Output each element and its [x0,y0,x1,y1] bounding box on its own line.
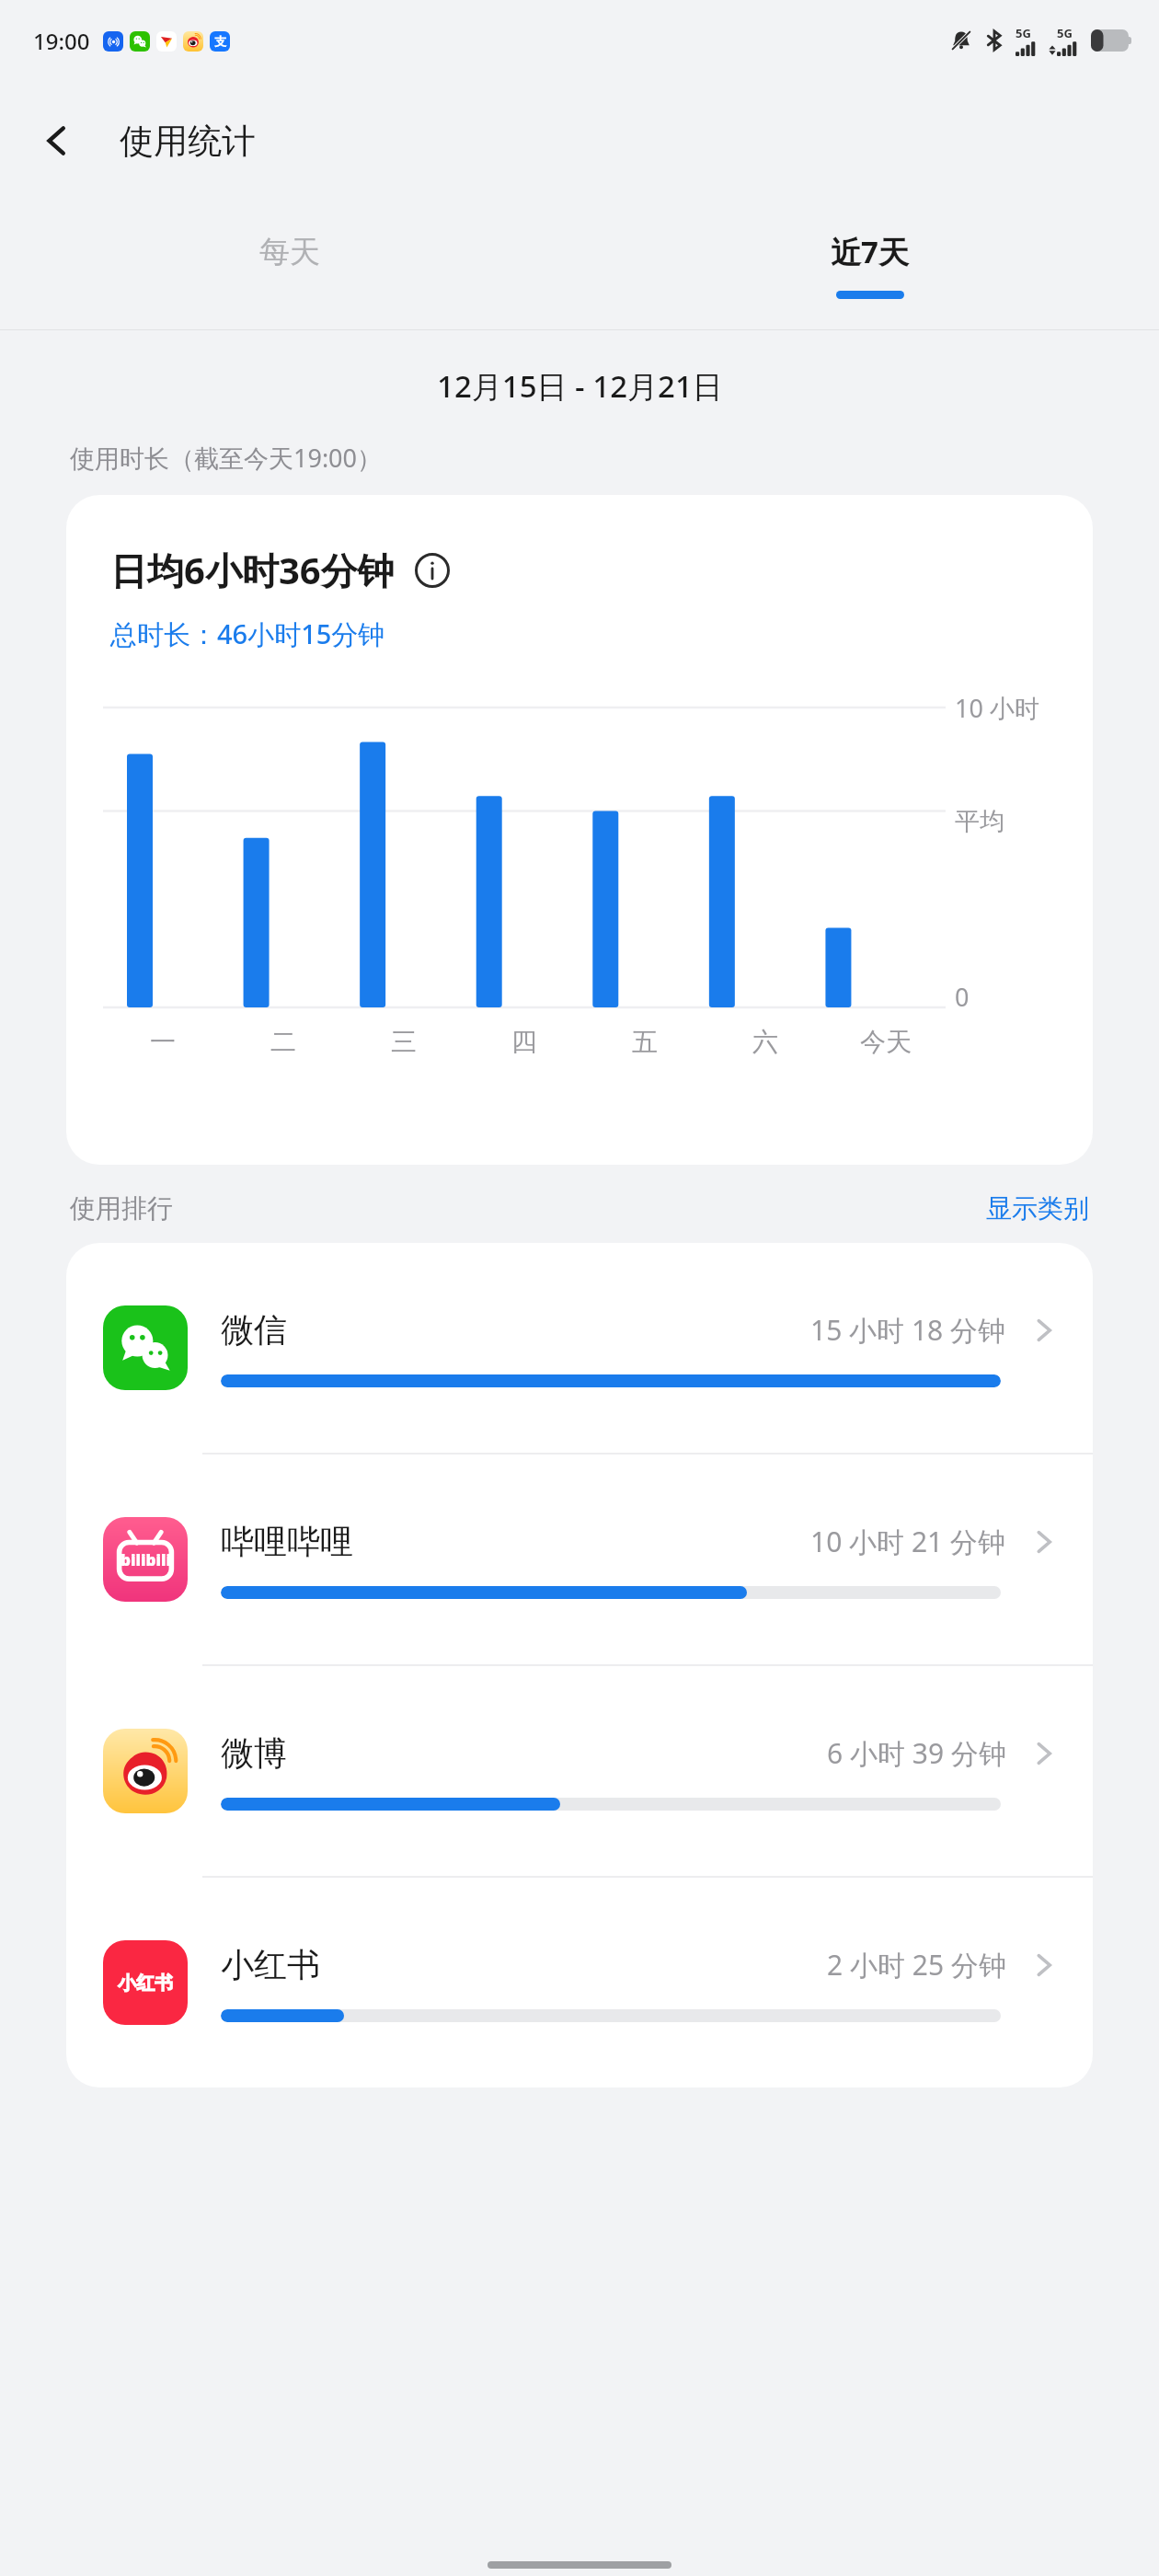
staticText: 微信 [221,1309,287,1351]
button[interactable]: 显示类别 [986,1192,1089,1225]
staticText: 每天 [259,233,320,271]
staticText: 使用统计 [120,120,256,163]
button[interactable]: Back [22,106,92,176]
button[interactable]: 小红书 [66,1878,1093,2087]
staticText: bilibili [120,1549,171,1570]
staticText: 日均6小时36分钟 [110,545,395,595]
staticText: 六 [752,1026,778,1058]
staticText: 6 小时 39 分钟 [827,1734,1006,1772]
staticText: 小红书 [221,1944,320,1985]
staticText: 小红书 [118,1972,173,1995]
staticText: 0 [955,980,970,1013]
other: Battery 23% [1091,29,1131,52]
button[interactable]: 微信 [66,1243,1093,1453]
staticText: 使用时长（截至今天19:00） [70,441,383,475]
staticText: 5G [1057,25,1073,41]
staticText: 今天 [860,1026,912,1058]
staticText: 哔哩哔哩 [221,1521,353,1562]
button[interactable]: 近7天 [579,201,1159,329]
staticText: 平均 [955,806,1004,837]
staticText: 总时长：46小时15分钟 [110,615,385,652]
staticText: 四 [511,1026,537,1058]
button[interactable]: 每天 [0,201,579,329]
button[interactable]: 微博 [66,1666,1093,1876]
button[interactable]: Info [413,551,452,590]
staticText: 微博 [221,1732,287,1774]
staticText: 五 [632,1026,658,1058]
staticText: 5G [1016,25,1031,41]
button[interactable]: bilibili [66,1455,1093,1664]
staticText: 12月15日 - 12月21日 [437,365,723,407]
staticText: 10 小时 [955,691,1039,724]
staticText: 2 小时 25 分钟 [827,1946,1006,1984]
staticText: 一 [150,1026,176,1058]
staticText: 显示类别 [986,1192,1089,1225]
other: Silent [949,29,973,52]
staticText: 近7天 [831,231,909,272]
staticText: 二 [270,1026,296,1058]
staticText: 15 小时 18 分钟 [810,1311,1006,1349]
staticText: 19:00 [33,26,90,56]
staticText: 三 [391,1026,417,1058]
staticText: 10 小时 21 分钟 [810,1523,1006,1560]
staticText: 支 [214,34,226,49]
staticText: 使用排行 [70,1192,173,1225]
other: Bluetooth [983,29,1005,52]
